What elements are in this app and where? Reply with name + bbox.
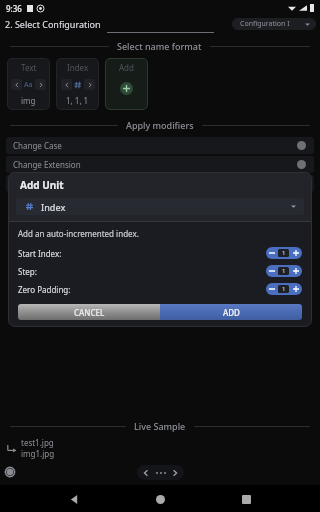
staticText: Zero Padding: [18, 284, 71, 295]
staticText: test1.jpg [21, 437, 54, 448]
button[interactable] [266, 283, 278, 295]
staticText: Add [119, 62, 134, 73]
button[interactable]: 1 [278, 267, 289, 275]
staticText: Change Extension [13, 159, 81, 170]
button[interactable]: Recents [234, 487, 258, 511]
staticText: CANCEL [74, 307, 105, 318]
button[interactable] [289, 247, 302, 259]
button[interactable]: Back [62, 487, 86, 511]
button[interactable]: Add characters at position [6, 175, 314, 192]
staticText: Live Sample [134, 420, 186, 432]
staticText: 1 [282, 249, 286, 257]
button[interactable]: Home [148, 487, 172, 511]
staticText: 1, 1, 1 [66, 95, 89, 106]
staticText: img [21, 95, 36, 106]
staticText: Text [21, 62, 37, 73]
staticText: 9:36 [6, 3, 22, 14]
staticText: img1.jpg [21, 448, 55, 459]
staticText: Step: [18, 266, 37, 277]
button[interactable] [289, 265, 302, 277]
button[interactable]: ADD [160, 304, 302, 320]
staticText: 2. Select Configuration [5, 18, 101, 30]
button[interactable]: Add [105, 58, 148, 110]
button[interactable]: Change Case [6, 137, 314, 154]
button[interactable] [266, 247, 278, 259]
staticText: Select name format [117, 40, 202, 52]
button[interactable] [266, 265, 278, 277]
staticText: Change Case [13, 140, 62, 151]
button[interactable]: Next [171, 469, 179, 477]
button[interactable]: CANCEL [18, 304, 160, 320]
staticText: Configuration I [240, 19, 305, 29]
button[interactable]: Change Extension [6, 156, 314, 173]
button[interactable]: Index [16, 198, 304, 215]
button[interactable]: Settings [3, 465, 17, 479]
staticText: Add Unit [20, 178, 64, 192]
button[interactable]: Previous [142, 469, 150, 477]
staticText: Index [41, 201, 291, 213]
staticText: 1 [282, 285, 286, 293]
button[interactable]: Text [7, 58, 50, 110]
button[interactable]: Index [56, 58, 99, 110]
button[interactable]: 1 [278, 249, 289, 257]
staticText: Add an auto-incremented index. [18, 228, 139, 239]
staticText: ADD [223, 307, 240, 318]
staticText: Aa [24, 80, 33, 90]
button[interactable]: 1 [278, 285, 289, 293]
staticText: Start Index: [18, 248, 62, 259]
staticText: Add characters at position [13, 178, 112, 189]
button[interactable]: Configuration I [232, 18, 316, 30]
button[interactable] [289, 283, 302, 295]
staticText: Index [67, 62, 89, 73]
staticText: Apply modifiers [126, 119, 194, 131]
staticText: 1 [282, 267, 286, 275]
